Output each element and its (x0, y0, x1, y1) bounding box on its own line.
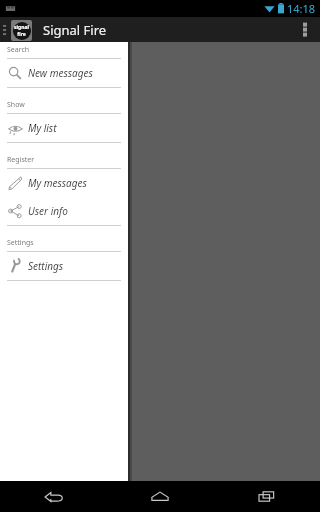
button[interactable]: New messages (0, 59, 128, 87)
button[interactable]: My list (0, 114, 128, 142)
staticText: My messages (28, 176, 87, 190)
button[interactable]: Back (0, 481, 106, 512)
button[interactable]: Recent apps (213, 481, 320, 512)
button[interactable]: Home (106, 481, 213, 512)
staticText: Register (7, 155, 35, 165)
staticText: New messages (28, 66, 93, 80)
button[interactable]: My messages (0, 169, 128, 197)
staticText: Search (7, 45, 30, 55)
staticText: Show (7, 100, 25, 110)
staticText: signal (14, 24, 29, 31)
button[interactable]: Settings (0, 252, 128, 280)
staticText: Settings (7, 238, 34, 248)
button[interactable]: User info (0, 197, 128, 225)
staticText: 14:18 (287, 1, 316, 16)
staticText: User info (28, 204, 68, 218)
staticText: fire (17, 31, 26, 38)
button[interactable]: Open navigation drawer (1, 18, 35, 42)
button[interactable]: More options (292, 17, 318, 42)
staticText: Settings (28, 259, 64, 273)
staticText: My list (28, 121, 57, 135)
staticText: Signal Fire (43, 21, 107, 39)
